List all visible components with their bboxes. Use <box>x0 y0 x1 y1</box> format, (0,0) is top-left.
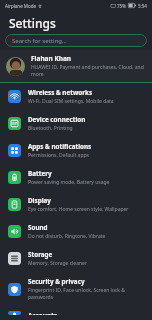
staticText: Sound <box>28 223 48 232</box>
staticText: Battery <box>28 169 52 178</box>
staticText: Fingerprint ID, Face unlock, Screen lock… <box>28 287 144 301</box>
button[interactable]: Flahan Khan <box>0 50 152 82</box>
staticText: Search for setting... <box>12 37 67 45</box>
staticText: Display <box>28 196 51 205</box>
staticText: Accounts <box>28 311 57 315</box>
staticText: Wireless & networks <box>28 88 93 97</box>
button[interactable]: Apps & notifications <box>0 137 152 164</box>
staticText: Do not disturb, Ringtone, Vibrate <box>28 233 106 240</box>
staticText: HUAWEI ID, Payment and purchases, Cloud,… <box>31 64 144 78</box>
button[interactable]: Wireless & networks <box>0 83 152 110</box>
staticText: Security & privacy <box>28 277 85 286</box>
staticText: Flahan Khan <box>31 54 72 63</box>
button[interactable]: Sound <box>0 218 152 245</box>
staticText: Eye comfort, Home screen style, Wallpape… <box>28 206 129 213</box>
staticText: 5:54 <box>138 3 147 9</box>
staticText: Device connection <box>28 115 86 124</box>
button[interactable]: Security & privacy <box>0 272 152 306</box>
button[interactable]: Accounts <box>0 306 152 320</box>
staticText: Airplane Mode <box>5 3 36 9</box>
staticText: Permissions, Default apps <box>28 152 89 159</box>
staticText: Settings <box>9 15 56 31</box>
button[interactable]: Device connection <box>0 110 152 137</box>
button[interactable]: Storage <box>0 245 152 272</box>
staticText: Apps & notifications <box>28 142 92 151</box>
staticText: Wi-Fi, Dual SIM settings, Mobile data <box>28 98 114 105</box>
staticText: 75% <box>117 3 126 9</box>
button[interactable]: Display <box>0 191 152 218</box>
button[interactable]: Search for setting... <box>5 34 147 47</box>
staticText: Memory, Storage cleaner <box>28 260 87 267</box>
staticText: Power saving mode, Battery usage <box>28 179 110 186</box>
button[interactable]: Battery <box>0 164 152 191</box>
staticText: Storage <box>28 250 53 259</box>
staticText: Bluetooth, Printing <box>28 125 73 132</box>
